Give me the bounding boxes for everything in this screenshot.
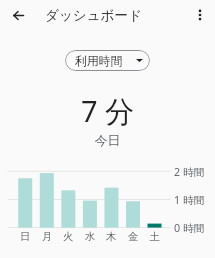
staticText: 日 [14, 230, 36, 243]
staticText: 火 [57, 230, 79, 243]
staticText: 利用時間 [75, 54, 123, 69]
staticText: 水 [79, 230, 101, 243]
staticText: 土 [144, 230, 166, 243]
button[interactable]: Back [6, 3, 31, 28]
button[interactable]: 利用時間 [65, 50, 150, 71]
staticText: 木 [100, 230, 122, 243]
staticText: ダッシュボード [45, 7, 143, 24]
staticText: 0 時間 [174, 221, 205, 236]
staticText: 今日 [0, 133, 215, 149]
staticText: 月 [36, 230, 58, 243]
staticText: 7 分 [0, 91, 215, 131]
staticText: 2 時間 [174, 165, 205, 180]
button[interactable]: More options [188, 3, 212, 27]
staticText: 1 時間 [174, 193, 205, 208]
staticText: 金 [122, 230, 144, 243]
